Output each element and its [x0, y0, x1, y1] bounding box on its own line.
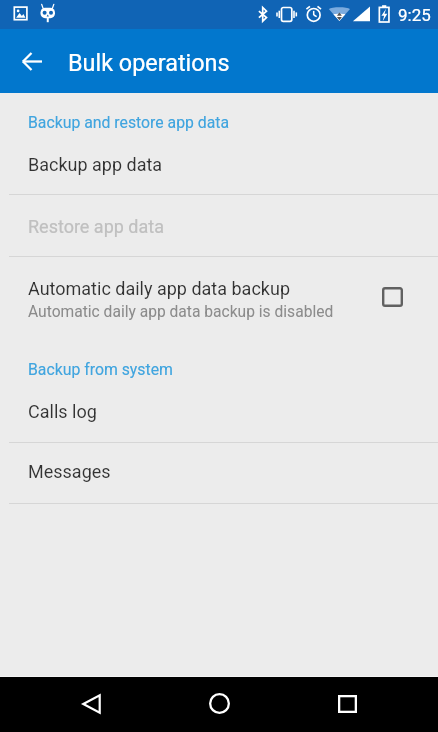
button[interactable]: Navigate up	[8, 29, 56, 93]
button[interactable]: Calls log	[0, 389, 438, 442]
button[interactable]: Recent apps	[311, 677, 383, 732]
staticText: Restore app data	[28, 216, 164, 237]
button[interactable]: Home	[183, 677, 255, 732]
staticText: Bulk operations	[68, 49, 230, 76]
staticText: Backup app data	[28, 154, 163, 175]
staticText: Messages	[28, 461, 111, 482]
button[interactable]: Back	[55, 677, 127, 732]
staticText: Automatic daily app data backup is disab…	[28, 303, 334, 321]
staticText: Automatic daily app data backup	[28, 278, 290, 299]
button: Restore app data	[0, 195, 438, 256]
staticText: Calls log	[28, 401, 97, 422]
button[interactable]: Messages	[0, 443, 438, 503]
button[interactable]: Automatic daily app data backup	[0, 257, 438, 336]
staticText: 9:25	[398, 5, 431, 25]
button[interactable]: Backup app data	[0, 141, 438, 194]
staticText: Backup from system	[28, 360, 173, 379]
staticText: Backup and restore app data	[28, 113, 230, 132]
button[interactable]: Automatic daily app data backup, off	[367, 267, 418, 327]
